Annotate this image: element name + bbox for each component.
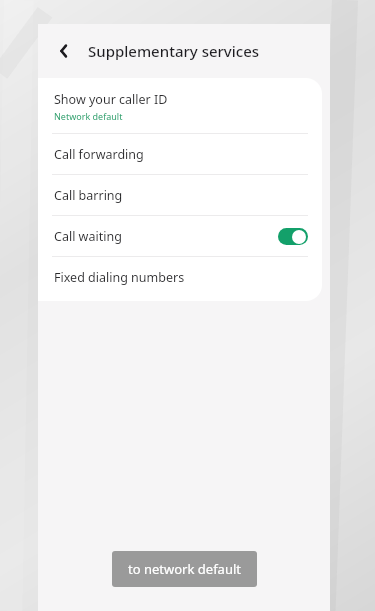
button[interactable]: Show your caller ID: [38, 78, 322, 133]
staticText: Show your caller ID: [54, 91, 168, 108]
button[interactable]: Call waiting: [38, 216, 322, 256]
staticText: Call waiting: [54, 228, 122, 245]
staticText: Fixed dialing numbers: [54, 269, 185, 286]
staticText: Supplementary services: [88, 41, 260, 61]
staticText: Call forwarding: [54, 146, 144, 163]
button[interactable]: to network default: [112, 551, 257, 587]
button[interactable]: Call barring: [38, 175, 322, 215]
button[interactable]: Call waiting toggle: [278, 228, 308, 245]
staticText: Call barring: [54, 187, 123, 204]
button[interactable]: Fixed dialing numbers: [38, 257, 322, 297]
button[interactable]: Call forwarding: [38, 134, 322, 174]
staticText: Network default: [54, 110, 123, 122]
staticText: to network default: [128, 560, 241, 578]
button[interactable]: Back: [48, 35, 80, 67]
